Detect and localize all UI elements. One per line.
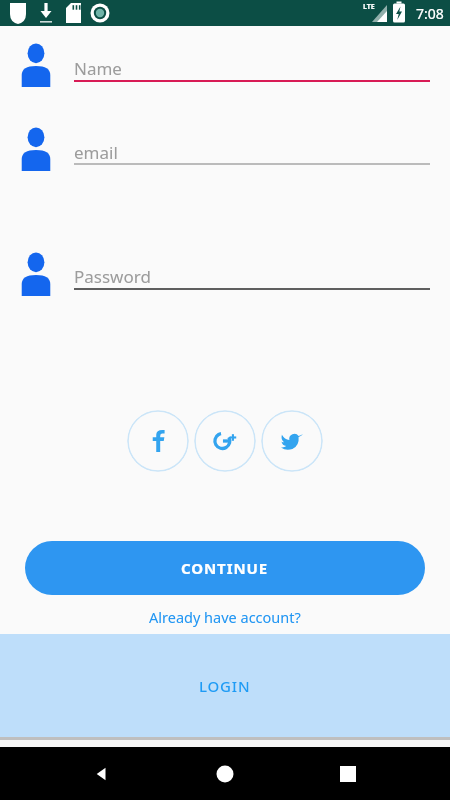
button[interactable]: Sign in with Twitter — [261, 410, 323, 472]
staticText: LOGIN — [199, 676, 251, 696]
staticText: Name — [74, 57, 122, 80]
button[interactable]: Sign in with Google Plus — [194, 410, 256, 472]
button[interactable]: Sign in with Facebook — [127, 410, 189, 472]
button[interactable]: Recent apps — [324, 750, 372, 798]
button[interactable]: Back — [78, 750, 126, 798]
staticText: LTE — [363, 2, 375, 12]
button[interactable]: CONTINUE — [25, 541, 425, 595]
button[interactable]: Home — [201, 750, 249, 798]
staticText: 7:08 — [416, 4, 444, 23]
staticText: CONTINUE — [181, 558, 269, 578]
staticText: email — [74, 141, 118, 164]
button[interactable]: Already have account? — [141, 604, 309, 630]
button[interactable]: LOGIN — [0, 634, 450, 737]
staticText: Password — [74, 265, 151, 288]
staticText: Already have account? — [149, 607, 301, 627]
